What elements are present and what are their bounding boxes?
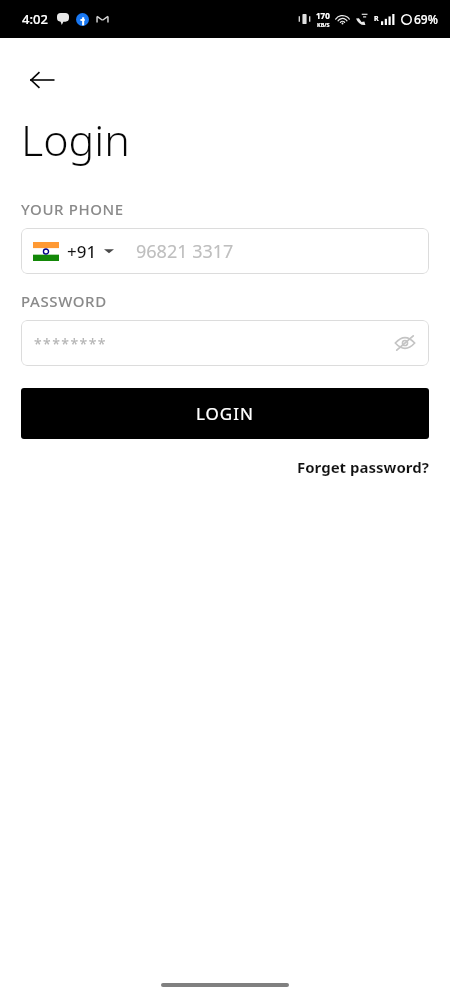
staticText: ******** (34, 334, 107, 353)
button[interactable]: +91 (21, 228, 429, 274)
staticText: Login (21, 110, 130, 169)
staticText: 4:02 (22, 10, 48, 28)
button[interactable]: LOGIN (21, 388, 429, 439)
staticText: KB/S (317, 21, 330, 28)
staticText: YOUR PHONE (21, 199, 124, 219)
button[interactable]: Show password (385, 323, 425, 363)
staticText: +91 (67, 240, 97, 263)
button[interactable]: Forget password? (297, 457, 429, 477)
staticText: PASSWORD (21, 291, 107, 311)
staticText: LOGIN (196, 402, 254, 425)
button[interactable]: Back (14, 52, 70, 108)
button[interactable]: ******** (21, 320, 429, 366)
staticText: Forget password? (297, 457, 429, 477)
staticText: 170 (316, 10, 330, 21)
staticText: 69% (414, 11, 438, 27)
staticText: 96821 3317 (136, 239, 234, 264)
staticText: R (374, 14, 379, 24)
